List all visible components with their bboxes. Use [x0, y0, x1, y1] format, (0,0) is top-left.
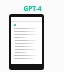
- staticText: GPT-4: [23, 4, 42, 13]
